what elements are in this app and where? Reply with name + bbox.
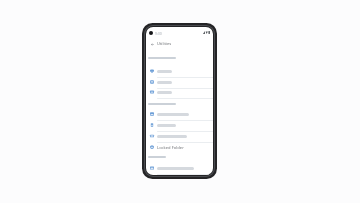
button[interactable] <box>146 77 212 88</box>
staticText: Locked Folder <box>157 145 184 151</box>
button[interactable] <box>146 120 212 131</box>
button[interactable] <box>146 131 212 142</box>
button[interactable]: Navigate back <box>149 41 155 47</box>
button[interactable]: Locked Folder <box>146 141 212 152</box>
button[interactable] <box>146 163 212 174</box>
button[interactable] <box>146 87 212 98</box>
button[interactable] <box>146 66 212 77</box>
button[interactable]: Utilities <box>157 41 172 46</box>
staticText: 9:30 <box>155 31 162 36</box>
button[interactable] <box>146 109 212 120</box>
